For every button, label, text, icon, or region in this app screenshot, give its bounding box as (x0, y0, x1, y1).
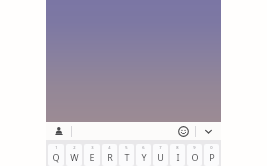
staticText: P (209, 151, 215, 163)
staticText: 2 (73, 145, 76, 150)
button[interactable]: 0 (204, 144, 219, 166)
staticText: E (89, 151, 95, 163)
button[interactable]: 1 (48, 144, 64, 166)
button[interactable]: 7 (153, 144, 168, 166)
button[interactable]: 9 (187, 144, 202, 166)
button[interactable]: Collapse keyboard (200, 123, 216, 139)
button[interactable]: 8 (170, 144, 185, 166)
staticText: 6 (142, 145, 145, 150)
staticText: I (176, 151, 180, 163)
staticText: 4 (108, 145, 111, 150)
button[interactable]: 2 (66, 144, 82, 166)
staticText: O (191, 151, 199, 163)
staticText: 5 (125, 145, 128, 150)
staticText: 3 (91, 145, 94, 150)
staticText: 9 (193, 145, 196, 150)
staticText: Q (52, 151, 60, 163)
button[interactable]: 5 (119, 144, 134, 166)
staticText: 7 (159, 145, 162, 150)
staticText: Y (141, 151, 147, 163)
staticText: T (124, 151, 130, 163)
staticText: W (70, 151, 79, 163)
staticText: U (157, 151, 164, 163)
staticText: R (107, 151, 113, 163)
button[interactable]: Emoji (175, 123, 191, 139)
button[interactable]: 4 (102, 144, 117, 166)
button[interactable]: 6 (136, 144, 151, 166)
staticText: 8 (176, 145, 179, 150)
button[interactable]: 3 (84, 144, 100, 166)
staticText: 1 (55, 145, 58, 150)
button[interactable] (46, 0, 221, 122)
staticText: 0 (210, 145, 213, 150)
button[interactable]: Stickers (51, 123, 67, 139)
